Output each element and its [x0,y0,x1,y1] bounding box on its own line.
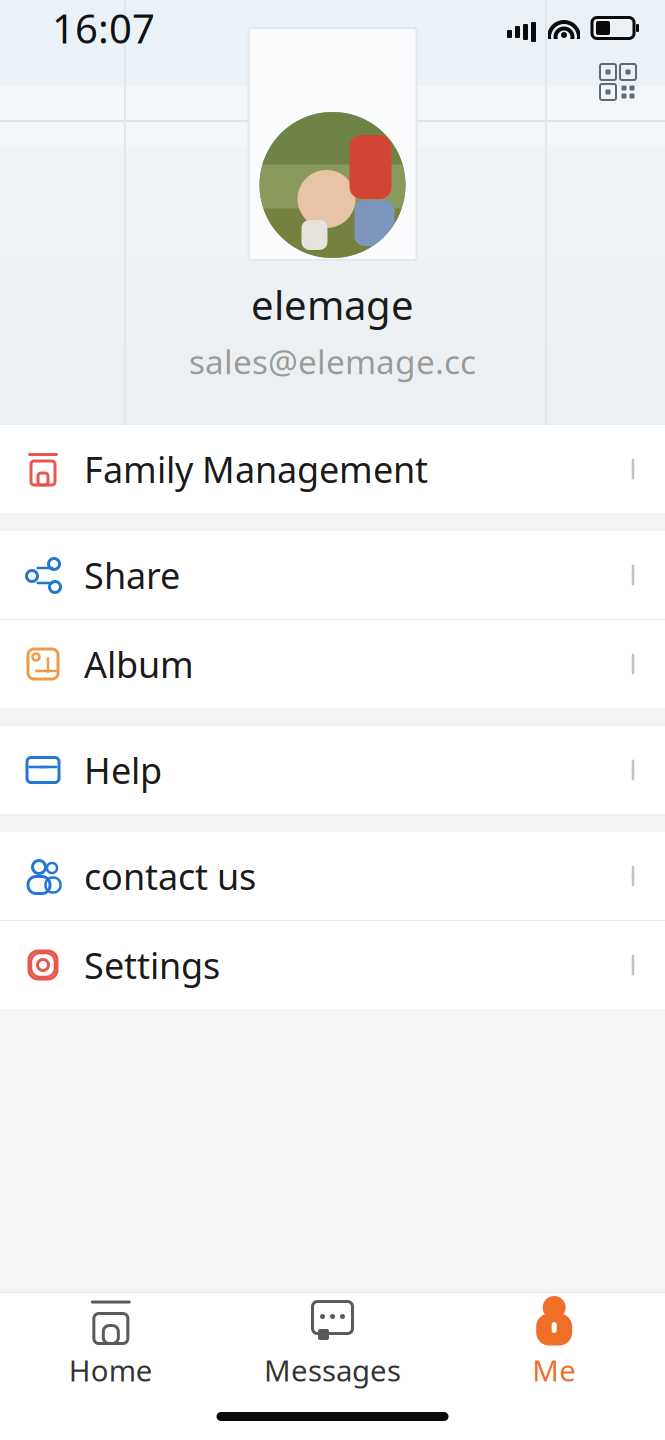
button[interactable]: Settings [0,921,665,1009]
staticText: Family Management [84,445,428,493]
staticText: Me [532,1350,576,1389]
button[interactable]: Album [0,620,665,708]
button[interactable]: Help [0,726,665,814]
button[interactable]: Home [0,1297,222,1389]
staticText: 16:07 [52,1,155,54]
staticText: Settings [84,941,220,989]
staticText: Album [84,640,194,688]
staticText: Home [69,1350,153,1389]
staticText: Share [84,551,180,599]
button[interactable]: Me [443,1297,665,1389]
staticText: Help [84,746,162,794]
staticText: elemage [251,278,414,331]
button[interactable]: Share [0,531,665,620]
staticText: sales@elemage.cc [189,339,476,383]
staticText: Messages [264,1350,401,1389]
button[interactable]: contact us [0,832,665,921]
staticText: contact us [84,852,256,900]
button[interactable]: Messages [222,1297,443,1389]
button[interactable]: Scan QR code [589,53,647,111]
button[interactable]: Family Management [0,425,665,513]
